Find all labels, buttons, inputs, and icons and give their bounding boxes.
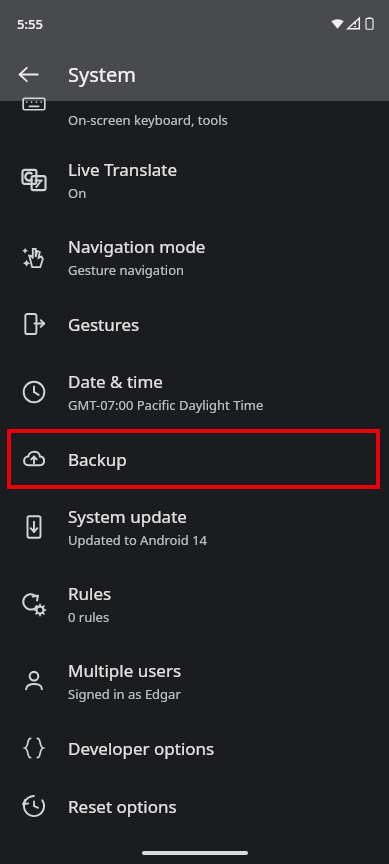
staticText: Signed in as Edgar (68, 685, 181, 703)
staticText: System (68, 61, 136, 88)
staticText: Gestures (68, 313, 140, 336)
button[interactable]: Developer options (0, 719, 389, 777)
staticText: Multiple users (68, 659, 182, 682)
button[interactable]: Back (6, 52, 50, 96)
staticText: On (68, 184, 87, 202)
button[interactable]: On-screen keyboard, tools (0, 101, 389, 141)
button[interactable]: System update (0, 488, 389, 565)
staticText: 0 rules (68, 608, 110, 626)
staticText: On-screen keyboard, tools (68, 111, 228, 129)
staticText: GMT-07:00 Pacific Daylight Time (68, 396, 264, 414)
staticText: Gesture navigation (68, 261, 185, 279)
button[interactable]: Reset options (0, 777, 389, 835)
button[interactable]: Gestures (0, 295, 389, 353)
staticText: 5:55 (17, 15, 43, 33)
button[interactable]: Navigation mode (0, 218, 389, 295)
staticText: Navigation mode (68, 235, 206, 258)
button[interactable]: Date & time (0, 353, 389, 430)
staticText: Updated to Android 14 (68, 531, 208, 549)
staticText: Developer options (68, 737, 215, 760)
staticText: System update (68, 505, 187, 528)
staticText: Live Translate (68, 158, 178, 181)
staticText: Date & time (68, 370, 163, 393)
staticText: Reset options (68, 795, 177, 818)
button[interactable]: Multiple users (0, 642, 389, 719)
button[interactable]: Rules (0, 565, 389, 642)
staticText: Backup (68, 448, 127, 471)
button[interactable]: Backup (0, 430, 389, 488)
button[interactable]: Live Translate (0, 141, 389, 218)
staticText: Rules (68, 582, 112, 605)
